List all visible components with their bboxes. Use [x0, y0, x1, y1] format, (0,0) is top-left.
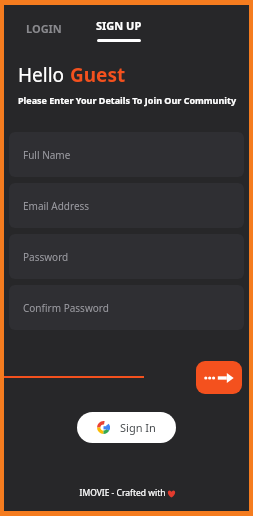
staticText: Confirm Password	[23, 301, 109, 315]
staticText: Guest	[70, 62, 126, 88]
button[interactable]: Sign In	[77, 412, 176, 443]
staticText: Hello	[18, 62, 70, 88]
button[interactable]: Password	[9, 234, 244, 279]
button[interactable]: Continue	[196, 361, 242, 394]
button[interactable]: Email Address	[9, 183, 244, 228]
staticText: IMOVIE - Crafted with	[78, 487, 167, 499]
button[interactable]: LOGIN	[20, 18, 68, 39]
staticText: SIGN UP	[96, 18, 142, 33]
staticText: Full Name	[23, 148, 71, 162]
staticText: Please Enter Your Details To Join Our Co…	[18, 94, 237, 106]
staticText: Sign In	[120, 420, 156, 435]
staticText: Email Address	[23, 199, 90, 213]
staticText: Password	[23, 250, 69, 264]
button[interactable]: Full Name	[9, 132, 244, 177]
staticText: LOGIN	[26, 21, 62, 36]
button[interactable]: SIGN UP	[90, 18, 148, 42]
button[interactable]: Confirm Password	[9, 285, 244, 330]
